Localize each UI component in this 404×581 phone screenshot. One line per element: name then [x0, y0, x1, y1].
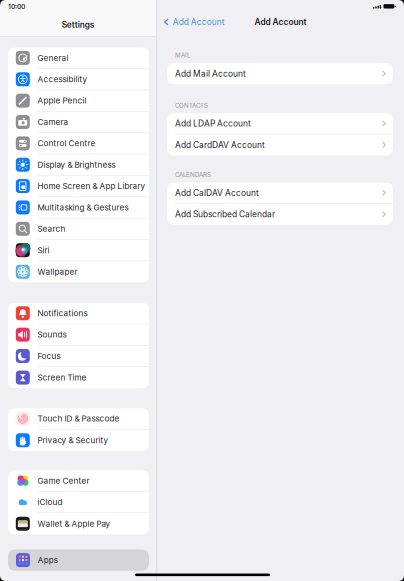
staticText: iCloud	[37, 497, 62, 507]
button[interactable]: Privacy & Security	[8, 430, 149, 451]
staticText: Screen Time	[37, 373, 86, 382]
button[interactable]: Multitasking & Gestures	[8, 197, 149, 218]
button[interactable]: Apple Pencil	[8, 90, 149, 112]
staticText: Add CalDAV Account	[175, 188, 259, 198]
staticText: Focus	[37, 351, 60, 361]
button[interactable]: Sounds	[8, 324, 149, 346]
staticText: Wallet & Apple Pay	[37, 519, 110, 529]
staticText: Wallpaper	[37, 267, 77, 277]
staticText: Home Screen & App Library	[37, 181, 145, 191]
button[interactable]: Apps	[8, 549, 149, 571]
staticText: Siri	[37, 245, 49, 255]
staticText: Multitasking & Gestures	[37, 202, 128, 212]
button[interactable]: Control Centre	[8, 133, 149, 154]
button[interactable]: Siri	[8, 240, 149, 261]
button[interactable]: Wallet & Apple Pay	[8, 513, 149, 534]
button[interactable]: Screen Time	[8, 367, 149, 388]
staticText: Apple Pencil	[37, 96, 86, 105]
staticText: Touch ID & Passcode	[37, 414, 119, 423]
staticText: Add Subscribed Calendar	[175, 209, 275, 219]
staticText: Privacy & Security	[37, 435, 108, 445]
staticText: Settings	[62, 20, 95, 30]
button[interactable]: General	[8, 47, 149, 69]
button[interactable]: Wallpaper	[8, 261, 149, 282]
staticText: Game Center	[37, 476, 89, 486]
staticText: Add Account	[254, 17, 306, 27]
button[interactable]: Game Center	[8, 470, 149, 492]
button[interactable]: Touch ID & Passcode	[8, 408, 149, 430]
staticText: Accessibility	[37, 74, 87, 84]
button[interactable]: Camera	[8, 112, 149, 133]
button[interactable]: Add Subscribed Calendar	[167, 204, 393, 225]
button[interactable]: Display & Brightness	[8, 154, 149, 176]
staticText: Add Account	[173, 17, 225, 27]
button[interactable]: Add CardDAV Account	[167, 134, 393, 155]
button[interactable]: Search	[8, 218, 149, 240]
staticText: Search	[37, 224, 65, 234]
staticText: MAIL	[175, 52, 190, 59]
staticText: Add Mail Account	[175, 68, 246, 79]
staticText: General	[37, 53, 68, 63]
button[interactable]: iCloud	[8, 492, 149, 513]
button[interactable]: Accessibility	[8, 69, 149, 90]
button[interactable]: Add LDAP Account	[167, 113, 393, 134]
staticText: Notifications	[37, 308, 87, 318]
staticText: 10:00	[8, 3, 25, 11]
button[interactable]: Notifications	[8, 303, 149, 324]
staticText: Add CardDAV Account	[175, 140, 265, 150]
button[interactable]: Add CalDAV Account	[167, 182, 393, 204]
staticText: Sounds	[37, 330, 66, 339]
staticText: CALENDARS	[175, 171, 211, 178]
button[interactable]: Home Screen & App Library	[8, 176, 149, 197]
button[interactable]: Add Mail Account	[167, 63, 393, 84]
staticText: Add LDAP Account	[175, 118, 251, 129]
staticText: CONTACTS	[175, 102, 208, 109]
button[interactable]: Add Account	[157, 10, 225, 34]
button[interactable]: Focus	[8, 346, 149, 367]
staticText: Display & Brightness	[37, 160, 115, 170]
staticText: Camera	[37, 117, 68, 127]
staticText: Control Centre	[37, 138, 95, 148]
staticText: Apps	[38, 555, 58, 565]
